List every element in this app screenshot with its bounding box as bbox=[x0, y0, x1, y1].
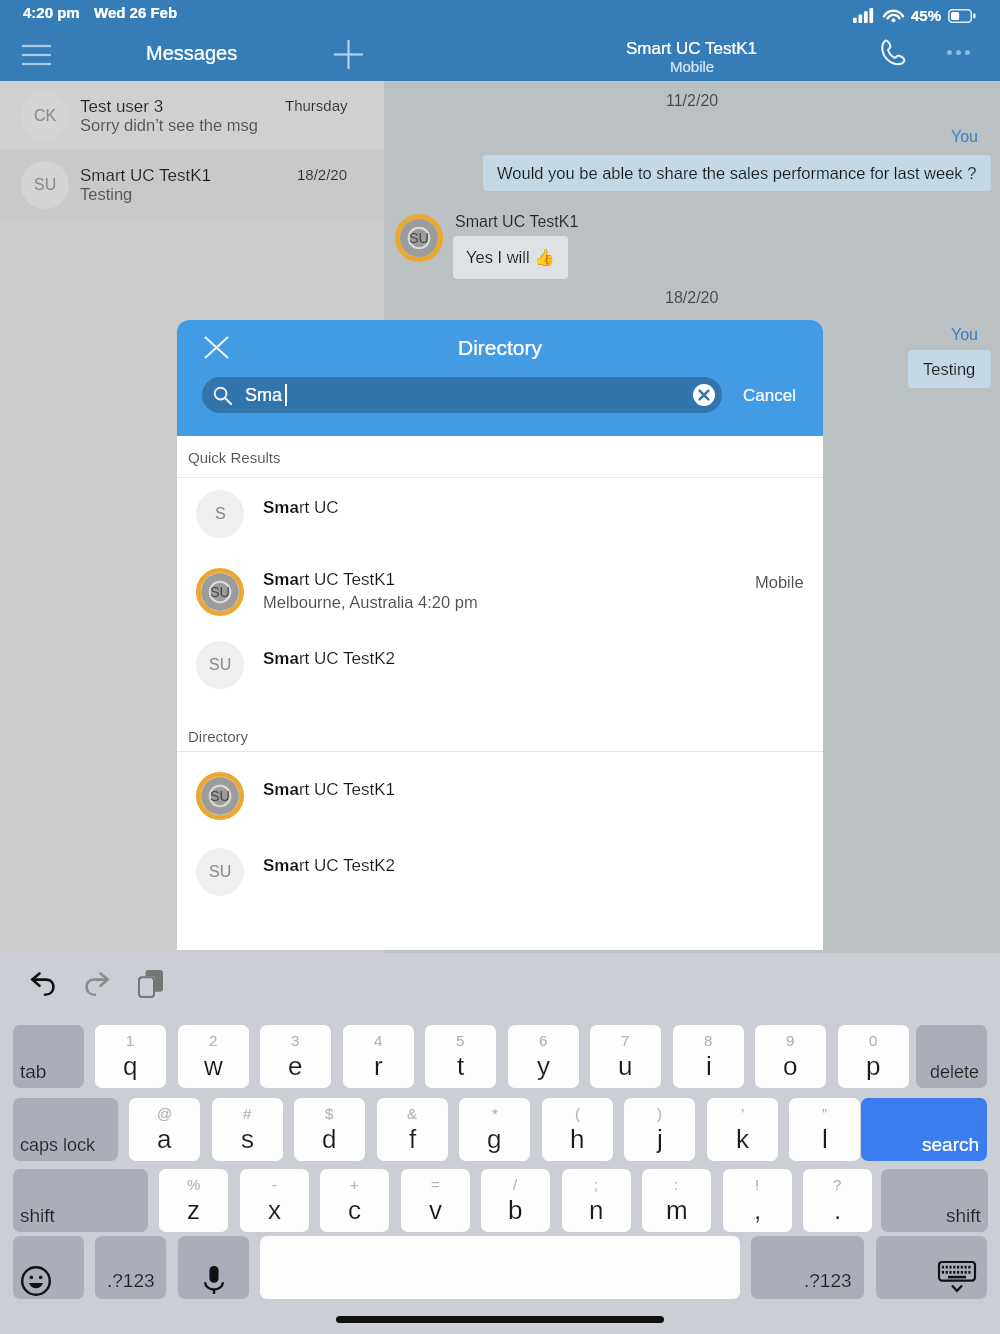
button[interactable]: SU bbox=[177, 758, 823, 834]
button[interactable]: # bbox=[212, 1098, 283, 1161]
staticText: b bbox=[508, 1195, 523, 1224]
staticText: & bbox=[407, 1105, 418, 1122]
staticText: ) bbox=[657, 1105, 662, 1122]
button[interactable]: 9 bbox=[755, 1025, 826, 1088]
button[interactable]: Emoji bbox=[13, 1236, 84, 1299]
button[interactable]: SU bbox=[177, 627, 823, 703]
button[interactable]: ’ bbox=[707, 1098, 778, 1161]
button[interactable]: shift bbox=[13, 1169, 148, 1232]
staticText: Smart UC TestK1 bbox=[455, 213, 579, 231]
staticText: g bbox=[487, 1124, 502, 1153]
staticText: Sorry didn’t see the msg bbox=[80, 116, 258, 134]
button[interactable]: : bbox=[642, 1169, 711, 1232]
button[interactable]: ( bbox=[542, 1098, 613, 1161]
staticText: k bbox=[736, 1124, 749, 1153]
staticText: y bbox=[537, 1051, 550, 1080]
staticText: search bbox=[922, 1134, 980, 1155]
button[interactable]: Hide keyboard bbox=[876, 1236, 987, 1299]
staticText: Melbourne, Australia 4:20 pm bbox=[263, 593, 478, 611]
staticText: Yes I will 👍 bbox=[466, 248, 555, 267]
button[interactable]: 5 bbox=[425, 1025, 496, 1088]
button[interactable]: .?123 bbox=[95, 1236, 166, 1299]
staticText: z bbox=[187, 1195, 200, 1224]
button[interactable]: + bbox=[320, 1169, 389, 1232]
staticText: S bbox=[215, 505, 226, 523]
button[interactable]: Dictate bbox=[178, 1236, 249, 1299]
button[interactable]: / bbox=[481, 1169, 550, 1232]
button[interactable]: search bbox=[861, 1098, 987, 1161]
staticText: 7 bbox=[621, 1032, 630, 1049]
button[interactable]: SU bbox=[177, 554, 823, 630]
button[interactable]: ” bbox=[789, 1098, 860, 1161]
button[interactable]: CK bbox=[0, 81, 384, 150]
staticText: 18/2/20 bbox=[297, 166, 348, 183]
staticText: Directory bbox=[188, 728, 249, 745]
button[interactable]: & bbox=[377, 1098, 448, 1161]
staticText: shift bbox=[946, 1205, 981, 1226]
button[interactable]: ? bbox=[803, 1169, 872, 1232]
button[interactable]: = bbox=[401, 1169, 470, 1232]
button[interactable]: 4 bbox=[343, 1025, 414, 1088]
button[interactable]: S bbox=[177, 476, 823, 552]
button[interactable]: Cancel bbox=[739, 378, 800, 413]
staticText: Smart UC TestK1 bbox=[263, 570, 395, 589]
button[interactable]: Menu bbox=[12, 31, 60, 79]
button[interactable]: % bbox=[159, 1169, 228, 1232]
button[interactable]: 8 bbox=[673, 1025, 744, 1088]
button[interactable]: @ bbox=[129, 1098, 200, 1161]
staticText: ( bbox=[575, 1105, 580, 1122]
button[interactable]: 3 bbox=[260, 1025, 331, 1088]
staticText: Messages bbox=[146, 42, 238, 64]
staticText: SU bbox=[34, 176, 57, 194]
staticText: Testing bbox=[80, 185, 133, 203]
staticText: r bbox=[374, 1051, 383, 1080]
button[interactable]: $ bbox=[294, 1098, 365, 1161]
staticText: p bbox=[866, 1051, 881, 1080]
staticText: e bbox=[288, 1051, 303, 1080]
staticText: n bbox=[589, 1195, 604, 1224]
staticText: Sma bbox=[245, 385, 283, 405]
button[interactable]: 0 bbox=[838, 1025, 909, 1088]
button[interactable]: Undo bbox=[20, 961, 66, 1007]
button[interactable]: Call bbox=[870, 30, 914, 74]
button[interactable]: SU bbox=[177, 834, 823, 910]
button[interactable]: Close bbox=[193, 324, 239, 370]
staticText: Smart UC bbox=[263, 498, 339, 517]
button[interactable]: Paste bbox=[127, 961, 173, 1007]
button[interactable]: * bbox=[459, 1098, 530, 1161]
button[interactable]: delete bbox=[916, 1025, 987, 1088]
button[interactable]: More options bbox=[936, 30, 980, 74]
button[interactable]: caps lock bbox=[13, 1098, 118, 1161]
staticText: a bbox=[157, 1124, 172, 1153]
button[interactable]: ! bbox=[723, 1169, 792, 1232]
button[interactable]: ) bbox=[624, 1098, 695, 1161]
button[interactable]: 7 bbox=[590, 1025, 661, 1088]
button[interactable]: - bbox=[240, 1169, 309, 1232]
staticText: m bbox=[666, 1195, 688, 1224]
button[interactable]: shift bbox=[881, 1169, 988, 1232]
button[interactable]: 2 bbox=[178, 1025, 249, 1088]
button[interactable]: SU bbox=[0, 150, 384, 219]
staticText: Smart UC TestK1 bbox=[263, 780, 395, 799]
button[interactable]: .?123 bbox=[751, 1236, 864, 1299]
button[interactable]: New message bbox=[324, 30, 372, 78]
staticText: 0 bbox=[869, 1032, 878, 1049]
staticText: Smart UC TestK1 bbox=[80, 166, 212, 185]
staticText: ? bbox=[833, 1176, 842, 1193]
staticText: ’ bbox=[741, 1105, 745, 1122]
staticText: You bbox=[951, 326, 978, 344]
staticText: Directory bbox=[458, 336, 543, 359]
staticText: x bbox=[268, 1195, 281, 1224]
button[interactable]: Sma bbox=[202, 377, 722, 413]
button[interactable]: Redo bbox=[73, 961, 119, 1007]
staticText: c bbox=[348, 1195, 361, 1224]
button[interactable]: ; bbox=[562, 1169, 631, 1232]
button[interactable]: 1 bbox=[95, 1025, 166, 1088]
staticText: You bbox=[951, 128, 978, 146]
staticText: 4:20 pm bbox=[23, 4, 80, 21]
button[interactable]: 6 bbox=[508, 1025, 579, 1088]
button[interactable]: tab bbox=[13, 1025, 84, 1088]
staticText: SU bbox=[210, 788, 230, 804]
staticText: Smart UC TestK2 bbox=[263, 649, 395, 668]
